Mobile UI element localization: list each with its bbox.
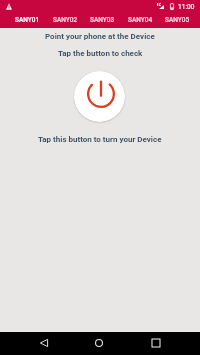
button[interactable]: SANY05	[159, 13, 196, 28]
staticText: SANY04	[128, 16, 153, 24]
button[interactable]: Power	[74, 71, 125, 122]
button[interactable]: Recents	[148, 335, 164, 351]
staticText: Point your phone at the Device	[45, 32, 155, 41]
staticText: SANY03	[90, 16, 115, 24]
staticText: 11:00	[178, 3, 195, 11]
button[interactable]: SANY04	[122, 13, 159, 28]
button[interactable]: SANY01	[9, 13, 46, 28]
button[interactable]: SANY02	[47, 13, 84, 28]
staticText: Tap the button to check	[58, 49, 143, 58]
button[interactable]: SANY03	[84, 13, 121, 28]
staticText: SANY05	[165, 16, 190, 24]
staticText: SANY01	[15, 16, 40, 24]
staticText: SANY02	[53, 16, 78, 24]
button[interactable]: Back	[36, 335, 52, 351]
button[interactable]: Home	[91, 335, 107, 351]
staticText: Tap this button to turn your Device	[38, 135, 162, 144]
